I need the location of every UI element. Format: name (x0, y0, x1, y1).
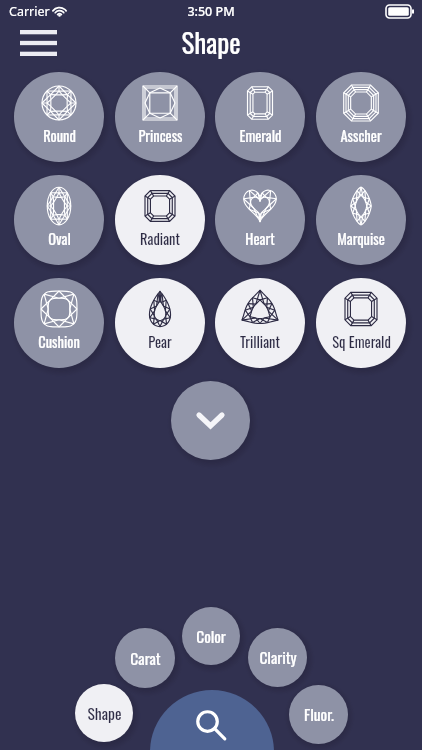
button[interactable]: Pear (115, 278, 205, 368)
staticText: Cushion (38, 331, 80, 352)
staticText: Clarity (259, 646, 297, 669)
staticText: Sq Emerald (332, 331, 391, 352)
button[interactable]: Round (14, 72, 104, 162)
staticText: Emerald (239, 125, 282, 146)
button[interactable]: Fluor. (289, 685, 348, 744)
button[interactable]: Asscher (316, 72, 406, 162)
staticText: Shape (87, 702, 122, 725)
button[interactable]: Clarity (248, 628, 307, 687)
staticText: Oval (48, 228, 71, 249)
staticText: Radiant (140, 228, 180, 249)
button[interactable]: Cushion (14, 278, 104, 368)
button[interactable]: Shape (75, 684, 133, 742)
button[interactable]: Emerald (215, 72, 305, 162)
staticText: Marquise (337, 228, 385, 249)
staticText: Fluor. (304, 703, 334, 726)
button[interactable]: Princess (115, 72, 205, 162)
staticText: 3:50 PM (0, 3, 422, 20)
button[interactable]: Oval (14, 175, 104, 265)
staticText: Trilliant (240, 331, 280, 352)
button[interactable]: Marquise (316, 175, 406, 265)
button[interactable]: Search (150, 690, 274, 750)
staticText: Princess (138, 125, 183, 146)
button[interactable]: Radiant (115, 175, 205, 265)
button[interactable]: Menu (8, 20, 69, 65)
button[interactable]: Heart (215, 175, 305, 265)
button[interactable]: Trilliant (215, 278, 305, 368)
staticText: Carrier (9, 3, 50, 20)
staticText: Pear (148, 331, 172, 352)
button[interactable]: Show more shapes (171, 381, 250, 460)
staticText: Color (196, 625, 226, 648)
staticText: Round (43, 125, 76, 146)
button[interactable]: Sq Emerald (316, 278, 406, 368)
staticText: Heart (245, 228, 275, 249)
staticText: Carat (130, 647, 161, 670)
button[interactable]: Color (182, 607, 240, 665)
staticText: Asscher (340, 125, 382, 146)
button[interactable]: Carat (115, 628, 175, 688)
staticText: Shape (0, 22, 422, 62)
